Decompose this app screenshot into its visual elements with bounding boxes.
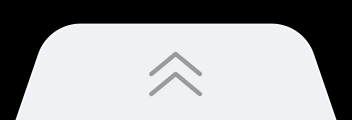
button[interactable]: Swipe up to open: [0, 0, 352, 120]
